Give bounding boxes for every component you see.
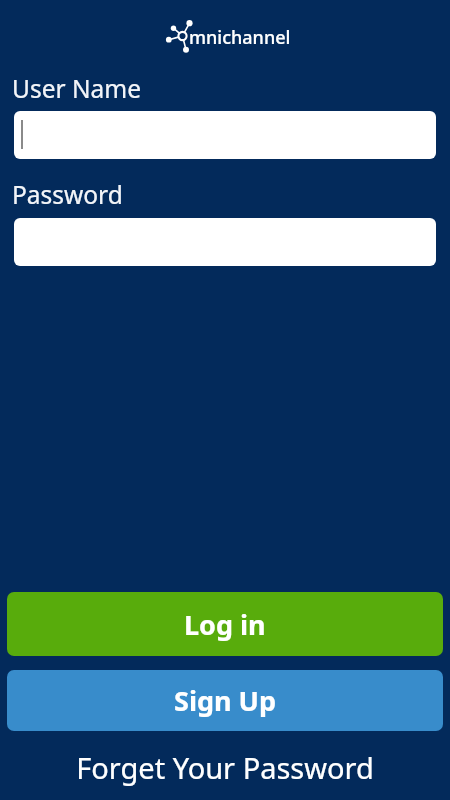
staticText: Sign Up — [174, 682, 277, 719]
staticText: Forget Your Password — [76, 748, 374, 787]
staticText: mnichannel — [189, 25, 291, 50]
staticText: User Name — [12, 72, 142, 105]
button[interactable] — [14, 218, 436, 266]
button[interactable] — [14, 111, 436, 159]
staticText: Log in — [184, 606, 266, 643]
staticText: Password — [12, 178, 123, 211]
button[interactable]: Log in — [7, 592, 443, 656]
button[interactable]: Sign Up — [7, 670, 443, 731]
button[interactable]: Forget Your Password — [0, 747, 450, 787]
